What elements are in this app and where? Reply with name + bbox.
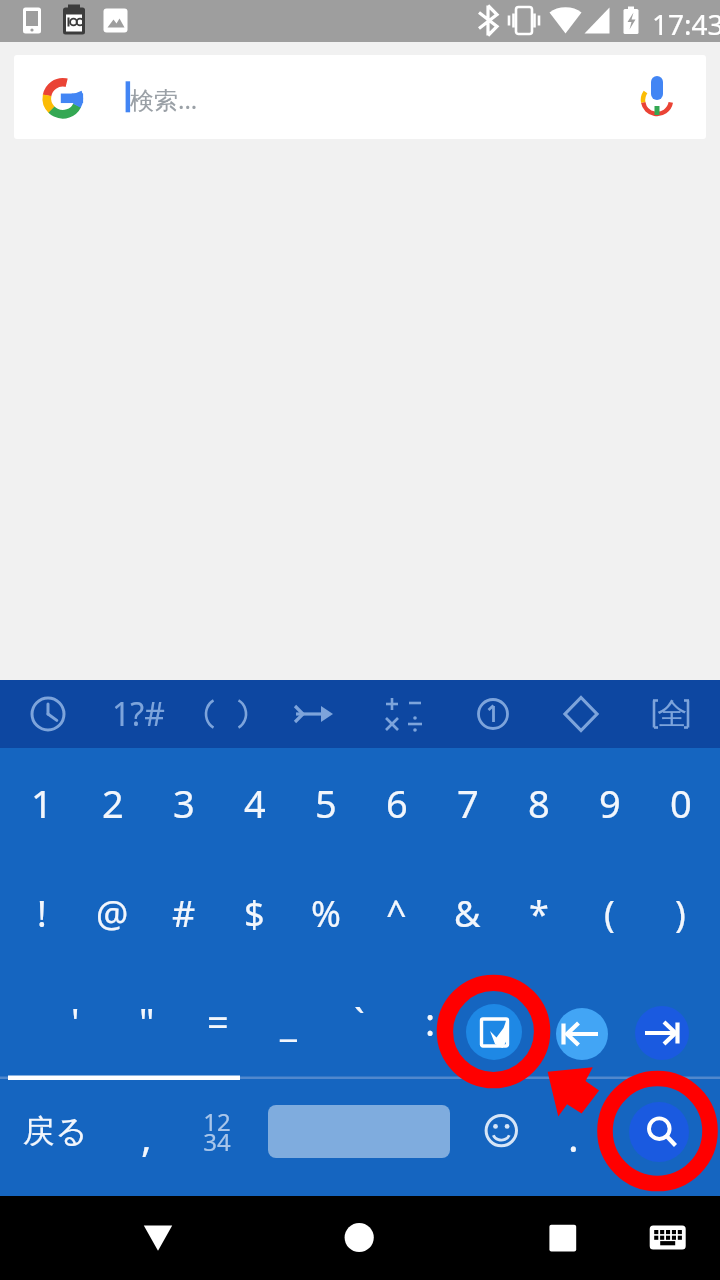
staticText: #: [172, 889, 196, 938]
button[interactable]: *: [503, 859, 574, 967]
button[interactable]: Tab: [635, 1006, 689, 1060]
button[interactable]: !: [6, 859, 77, 967]
staticText: ': [71, 995, 80, 1047]
staticText: _: [280, 995, 297, 1047]
button[interactable]: Emoji: [471, 1101, 531, 1161]
button[interactable]: Home: [319, 1196, 399, 1280]
staticText: 7: [457, 777, 479, 829]
button[interactable]: Back: [118, 1196, 198, 1280]
staticText: ": [139, 995, 155, 1047]
staticText: 検索...: [130, 83, 198, 116]
button[interactable]: _: [253, 967, 324, 1075]
button[interactable]: ": [111, 967, 182, 1075]
button[interactable]: Switch keyboard: [628, 1196, 708, 1280]
button[interactable]: 6: [361, 749, 432, 857]
staticText: ): [675, 889, 686, 938]
staticText: 全: [657, 695, 687, 733]
staticText: .: [568, 1109, 579, 1163]
staticText: !: [37, 889, 47, 938]
button[interactable]: Recents: [523, 1196, 603, 1280]
staticText: 8: [528, 777, 550, 829]
staticText: :: [425, 995, 436, 1047]
button[interactable]: ': [40, 967, 111, 1075]
staticText: @: [96, 889, 129, 938]
staticText: ^: [386, 889, 407, 938]
button[interactable]: 9: [574, 749, 645, 857]
staticText: $: [244, 889, 265, 938]
button[interactable]: Cursor left: [556, 1008, 608, 1060]
button[interactable]: @: [77, 859, 148, 967]
button[interactable]: Copy: [466, 1004, 522, 1060]
button[interactable]: 1?#: [104, 680, 172, 748]
button[interactable]: 7: [432, 749, 503, 857]
button[interactable]: :: [395, 967, 466, 1075]
staticText: 2: [102, 777, 124, 829]
staticText: *: [529, 889, 549, 938]
button[interactable]: 2: [77, 749, 148, 857]
staticText: `: [354, 995, 365, 1047]
button[interactable]: 1: [6, 749, 77, 857]
staticText: 9: [599, 777, 621, 829]
staticText: 12 34: [203, 1105, 231, 1158]
button[interactable]: 0: [645, 749, 716, 857]
button[interactable]: (: [574, 859, 645, 967]
button[interactable]: Search: [629, 1102, 689, 1162]
button[interactable]: =: [182, 967, 253, 1075]
button[interactable]: 全: [638, 680, 706, 748]
staticText: 4: [244, 777, 266, 829]
button[interactable]: &: [432, 859, 503, 967]
button[interactable]: 5: [290, 749, 361, 857]
button[interactable]: 検索...: [14, 55, 706, 139]
button[interactable]: %: [290, 859, 361, 967]
staticText: 0: [670, 777, 692, 829]
staticText: 1?#: [112, 692, 165, 736]
staticText: =: [207, 995, 229, 1047]
staticText: (: [604, 889, 615, 938]
button[interactable]: 4: [219, 749, 290, 857]
staticText: &: [454, 889, 481, 938]
button[interactable]: $: [219, 859, 290, 967]
staticText: 17:43: [652, 5, 720, 43]
button[interactable]: 12 34: [182, 1101, 252, 1161]
button[interactable]: ^: [361, 859, 432, 967]
button[interactable]: `: [324, 967, 395, 1075]
staticText: 5: [315, 777, 337, 829]
staticText: %: [311, 889, 341, 938]
button[interactable]: #: [148, 859, 219, 967]
staticText: 3: [173, 777, 195, 829]
button[interactable]: .: [543, 1106, 603, 1166]
button[interactable]: ,: [111, 1106, 181, 1166]
button[interactable]: 戻る: [13, 1101, 97, 1161]
staticText: 1: [31, 777, 53, 829]
staticText: ,: [141, 1109, 152, 1163]
button[interactable]: ): [645, 859, 716, 967]
staticText: 戻る: [23, 1111, 88, 1151]
button[interactable]: Space: [268, 1105, 450, 1158]
button[interactable]: 3: [148, 749, 219, 857]
staticText: 6: [386, 777, 408, 829]
button[interactable]: 8: [503, 749, 574, 857]
